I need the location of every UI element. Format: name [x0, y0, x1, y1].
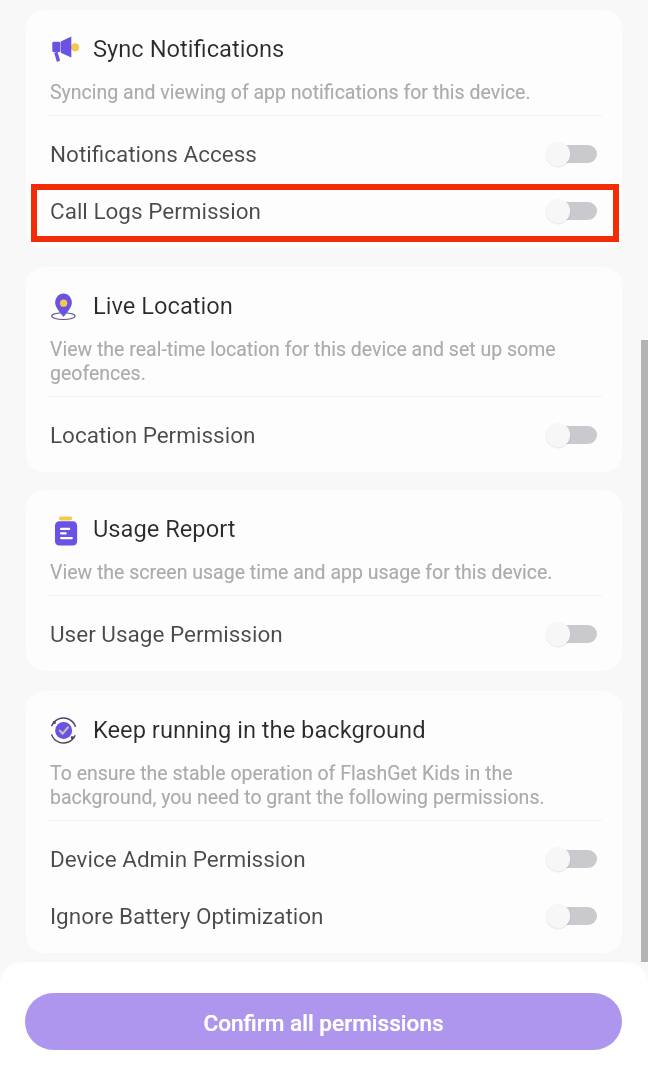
- staticText: Ignore Battery Optimization: [50, 903, 324, 929]
- button[interactable]: Call Logs Permission: [26, 182, 622, 239]
- staticText: User Usage Permission: [50, 621, 283, 647]
- button[interactable]: Notifications Access: [26, 125, 622, 182]
- staticText: Keep running in the background: [93, 716, 426, 744]
- staticText: Live Location: [93, 292, 233, 320]
- staticText: Location Permission: [50, 422, 256, 448]
- staticText: Notifications Access: [50, 141, 257, 167]
- button[interactable]: Device Admin Permission: [26, 830, 622, 887]
- button[interactable]: Toggle permission: [546, 621, 597, 647]
- staticText: View the screen usage time and app usage…: [50, 561, 553, 584]
- button[interactable]: Toggle permission: [546, 846, 597, 872]
- button[interactable]: Toggle permission: [546, 198, 597, 224]
- button[interactable]: Confirm all permissions: [25, 993, 622, 1050]
- staticText: Sync Notifications: [93, 35, 285, 63]
- button[interactable]: Toggle permission: [546, 903, 597, 929]
- staticText: Device Admin Permission: [50, 846, 306, 872]
- staticText: Call Logs Permission: [50, 198, 261, 224]
- button[interactable]: Location Permission: [26, 406, 622, 463]
- staticText: Confirm all permissions: [203, 1010, 444, 1036]
- staticText: Usage Report: [93, 515, 236, 543]
- button[interactable]: Toggle permission: [546, 141, 597, 167]
- button[interactable]: User Usage Permission: [26, 605, 622, 662]
- button[interactable]: Ignore Battery Optimization: [26, 887, 622, 944]
- staticText: View the real-time location for this dev…: [50, 338, 599, 385]
- button[interactable]: Toggle permission: [546, 422, 597, 448]
- staticText: Syncing and viewing of app notifications…: [50, 81, 531, 104]
- staticText: To ensure the stable operation of FlashG…: [50, 762, 599, 809]
